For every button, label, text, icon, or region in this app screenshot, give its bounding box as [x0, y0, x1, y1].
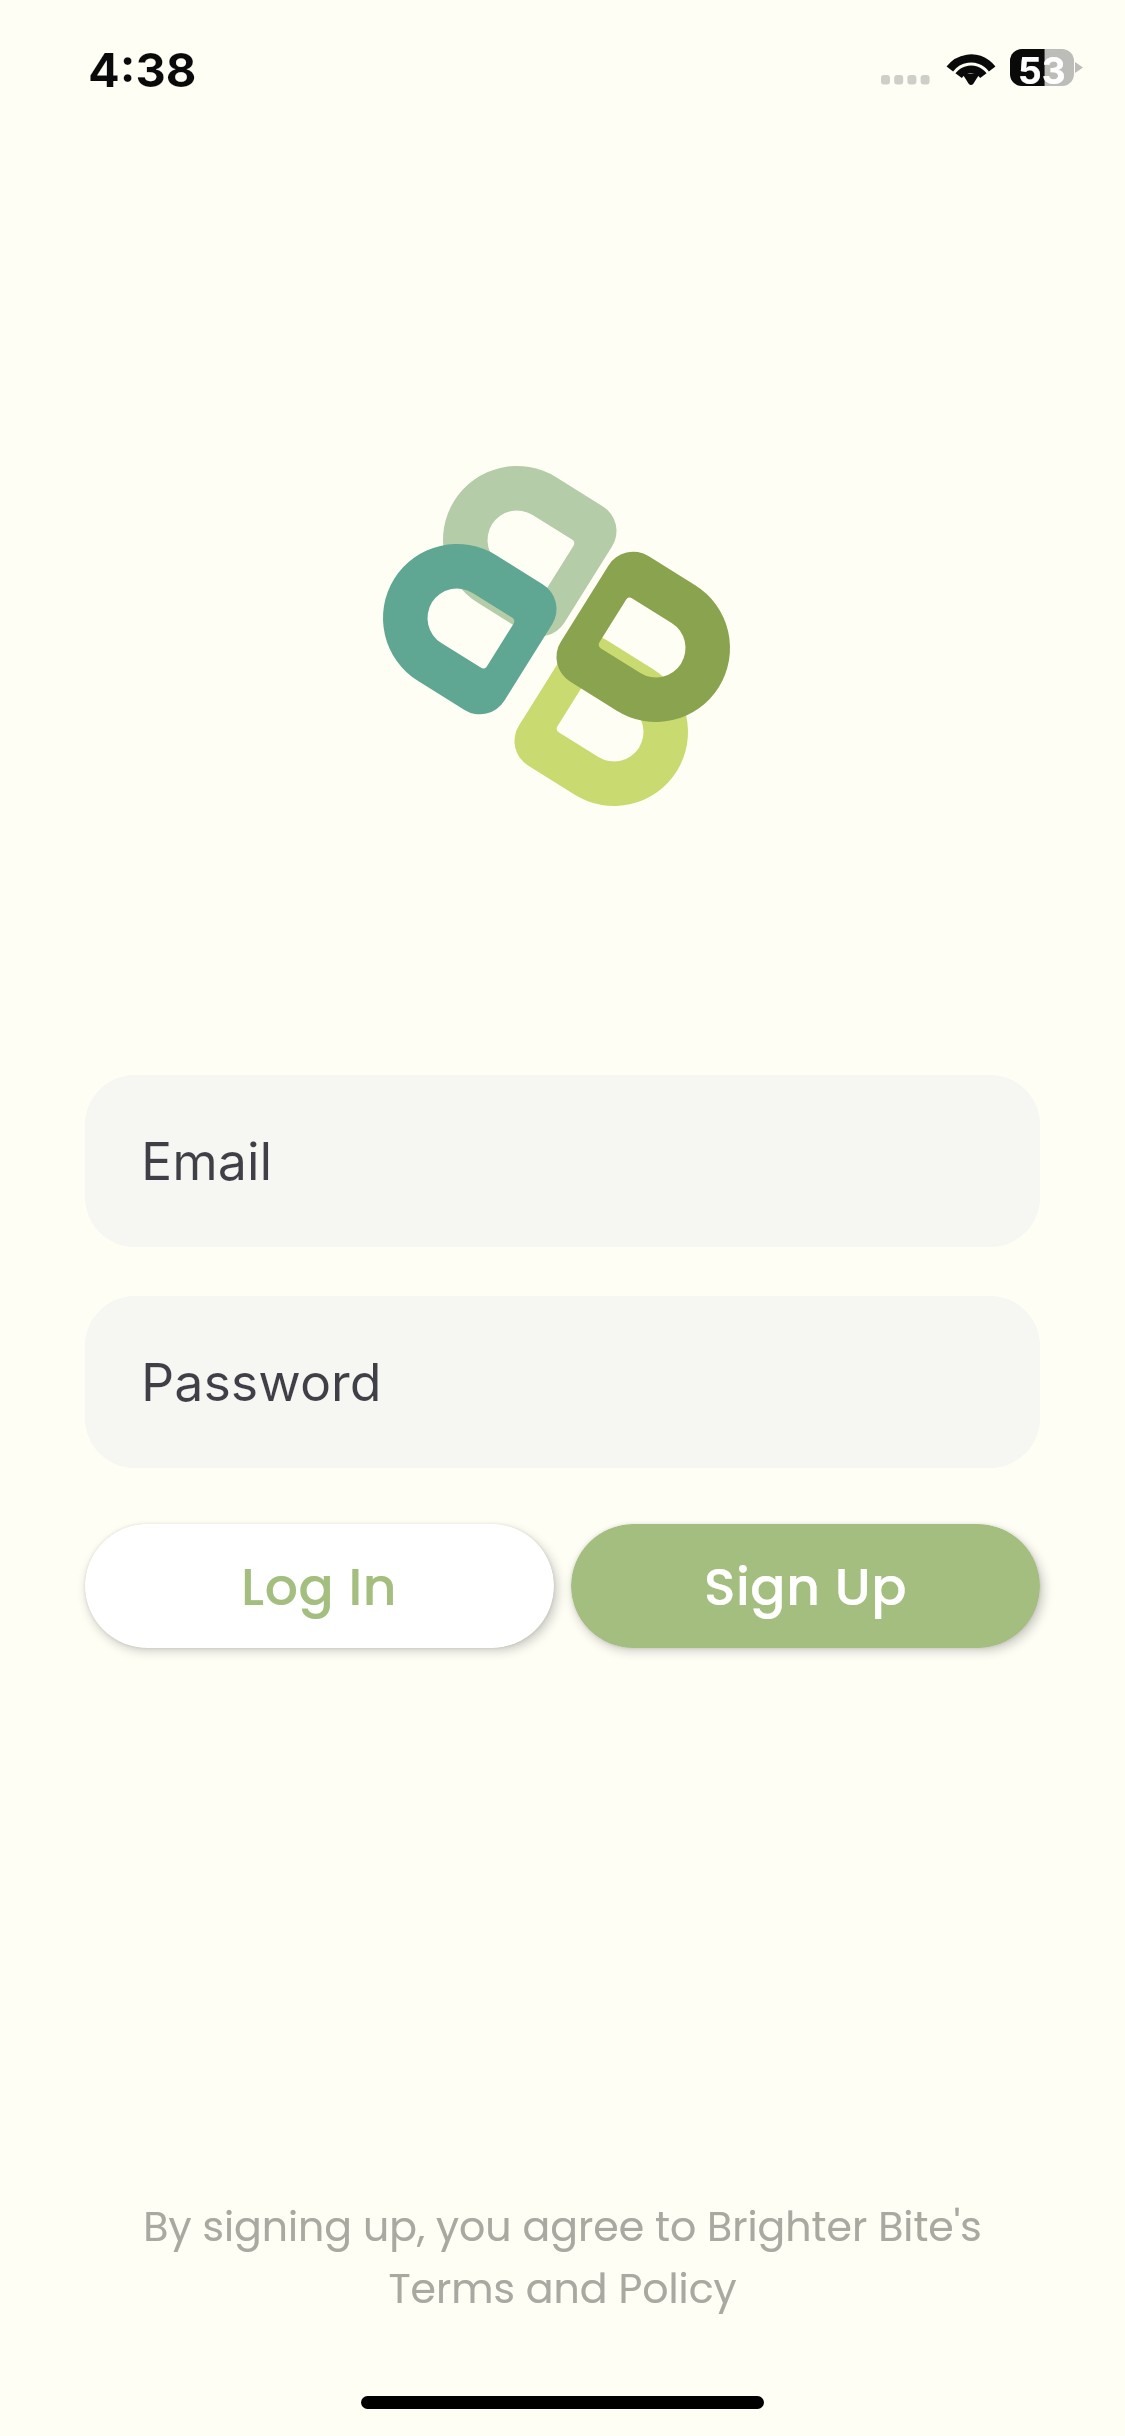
other: Brighter Bite logo	[370, 450, 750, 830]
button[interactable]: Sign Up	[571, 1524, 1040, 1648]
staticText: Password	[141, 1351, 382, 1414]
staticText: 4:38	[88, 41, 197, 98]
staticText: Sign Up	[704, 1550, 907, 1623]
staticText: 53	[1018, 48, 1066, 85]
other: Signal, Wi-Fi and battery status	[875, 40, 1090, 96]
button[interactable]: Password	[85, 1296, 1040, 1468]
staticText: Log In	[241, 1550, 398, 1623]
button[interactable]: Email	[85, 1075, 1040, 1247]
staticText: By signing up, you agree to Brighter Bit…	[128, 2198, 997, 2318]
staticText: Email	[141, 1130, 273, 1193]
button[interactable]: Log In	[85, 1524, 554, 1648]
